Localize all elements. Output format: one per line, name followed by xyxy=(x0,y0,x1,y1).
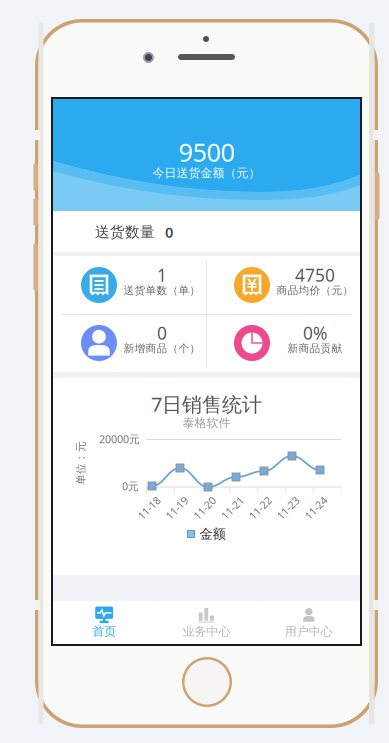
staticText: 送货单数（单） xyxy=(123,284,200,297)
staticText: 20000元 xyxy=(99,432,140,446)
button[interactable]: 送货数量 xyxy=(53,211,360,252)
staticText: 11-23 xyxy=(274,501,301,515)
staticText: 用户中心 xyxy=(285,624,333,639)
staticText: 9500 xyxy=(178,135,234,169)
staticText: 商品均价（元） xyxy=(276,284,353,297)
button[interactable]: 1 xyxy=(53,256,206,314)
staticText: 11-18 xyxy=(135,501,162,515)
staticText: 0% xyxy=(303,321,327,344)
staticText: 单位：元 xyxy=(59,456,103,469)
staticText: 7日销售统计 xyxy=(151,391,262,417)
staticText: 11-21 xyxy=(219,501,246,515)
button[interactable]: 用户中心 xyxy=(258,601,360,644)
staticText: 4750 xyxy=(295,263,335,286)
staticText: 0 xyxy=(165,222,173,242)
button[interactable]: 0% xyxy=(206,314,359,372)
button[interactable]: 4750 xyxy=(206,256,359,314)
staticText: 11-24 xyxy=(302,501,329,515)
staticText: 金额 xyxy=(199,526,225,542)
staticText: 新增商品（个） xyxy=(123,342,200,355)
staticText: 0元 xyxy=(122,479,139,493)
staticText: 11-19 xyxy=(163,501,190,515)
button[interactable]: 业务中心 xyxy=(155,601,258,644)
staticText: 业务中心 xyxy=(182,624,230,639)
staticText: 11-22 xyxy=(247,501,274,515)
staticText: 11-20 xyxy=(191,501,218,515)
staticText: 今日送货金额（元） xyxy=(152,166,260,180)
staticText: 送货数量 xyxy=(95,223,155,241)
staticText: 新商品贡献 xyxy=(287,342,342,355)
staticText: 1 xyxy=(157,263,167,286)
button[interactable]: 0 xyxy=(53,314,206,372)
staticText: 泰格软件 xyxy=(182,416,230,430)
staticText: 0 xyxy=(157,321,167,344)
button[interactable]: 首页 xyxy=(53,601,155,644)
staticText: 首页 xyxy=(92,624,116,639)
